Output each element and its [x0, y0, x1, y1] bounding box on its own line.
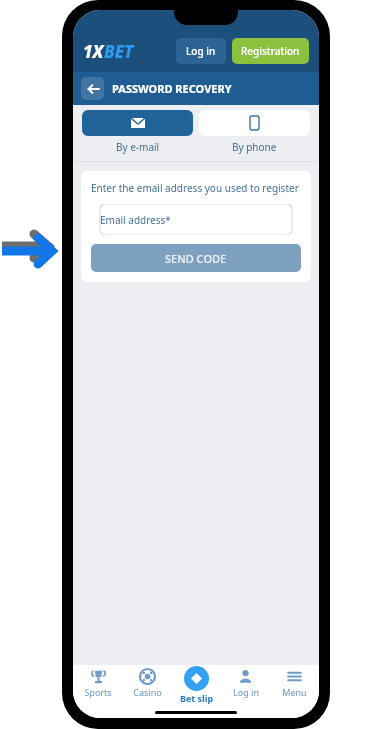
staticText: Log in [186, 44, 216, 58]
button[interactable]: By e-mail [82, 110, 193, 156]
staticText: Menu [282, 686, 307, 698]
staticText: By e-mail [116, 140, 160, 154]
button[interactable]: SEND CODE [91, 244, 301, 272]
staticText: Bet slip [180, 692, 214, 704]
staticText: Sports [84, 686, 112, 698]
staticText: Enter the email address you used to regi… [91, 181, 299, 195]
button[interactable]: Back [81, 77, 104, 100]
button[interactable]: Email address* [91, 204, 301, 235]
staticText: SEND CODE [165, 251, 227, 266]
button[interactable]: Bet slip [172, 666, 221, 704]
staticText: BET [104, 40, 134, 63]
button[interactable]: Registration [232, 38, 309, 64]
staticText: Email address* [100, 213, 171, 227]
button[interactable]: By phone [199, 110, 310, 156]
staticText: Casino [133, 686, 162, 698]
staticText: By phone [232, 140, 277, 154]
button[interactable]: Menu [270, 669, 319, 698]
staticText: Registration [241, 44, 300, 58]
button[interactable]: Log in [176, 38, 226, 64]
staticText: PASSWORD RECOVERY [112, 81, 232, 96]
button[interactable]: Sports [73, 669, 123, 698]
staticText: Log in [233, 686, 259, 698]
button[interactable]: Casino [123, 669, 172, 698]
button[interactable]: Log in [221, 669, 270, 698]
staticText: 1X [83, 40, 104, 63]
